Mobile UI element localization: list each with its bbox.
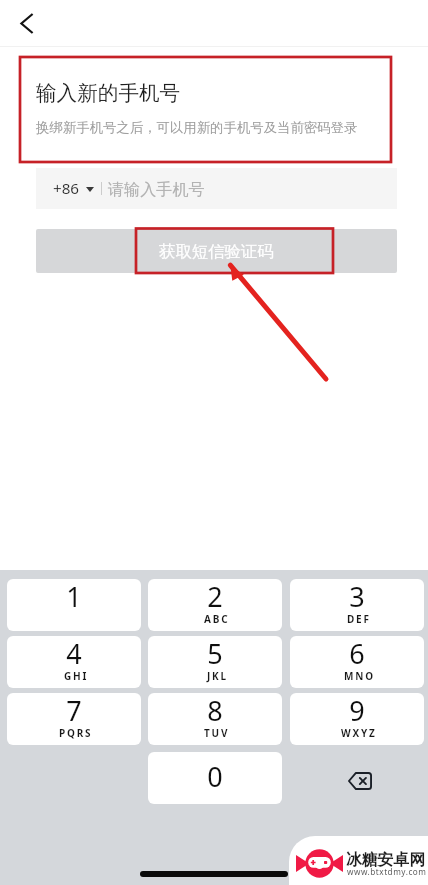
staticText: +86 bbox=[53, 178, 80, 199]
staticText: 输入新的手机号 bbox=[36, 80, 181, 106]
button[interactable]: 8 bbox=[148, 693, 282, 745]
button[interactable]: 0 bbox=[148, 752, 282, 804]
button[interactable]: 7 bbox=[7, 693, 141, 745]
staticText: 1 bbox=[7, 579, 141, 615]
staticText: 0 bbox=[148, 758, 282, 795]
button[interactable]: Backspace bbox=[293, 755, 427, 807]
staticText: 6 bbox=[290, 636, 424, 672]
staticText: MNO bbox=[344, 669, 375, 683]
button[interactable]: 1 bbox=[7, 579, 141, 631]
staticText: www.btxtdmy.com bbox=[347, 866, 427, 877]
button[interactable]: 获取短信验证码 bbox=[36, 229, 397, 273]
staticText: 9 bbox=[290, 693, 424, 729]
staticText: 获取短信验证码 bbox=[159, 241, 274, 262]
staticText: 7 bbox=[7, 693, 141, 729]
staticText: JKL bbox=[207, 669, 228, 683]
button[interactable]: 4 bbox=[7, 636, 141, 688]
staticText: WXYZ bbox=[341, 726, 377, 740]
button[interactable]: 3 bbox=[290, 579, 424, 631]
staticText: 2 bbox=[148, 579, 282, 615]
staticText: 3 bbox=[290, 579, 424, 615]
staticText: GHI bbox=[64, 669, 89, 683]
button[interactable]: +86 bbox=[36, 168, 397, 209]
button[interactable]: Back bbox=[7, 3, 47, 43]
button[interactable]: 2 bbox=[148, 579, 282, 631]
staticText: 换绑新手机号之后，可以用新的手机号及当前密码登录 bbox=[36, 119, 358, 136]
staticText: 冰糖安卓网 bbox=[346, 850, 425, 870]
staticText: TUV bbox=[204, 726, 230, 740]
staticText: 请输入手机号 bbox=[108, 179, 205, 199]
staticText: ABC bbox=[204, 612, 230, 626]
button[interactable]: 5 bbox=[148, 636, 282, 688]
button[interactable]: 6 bbox=[290, 636, 424, 688]
button[interactable]: 9 bbox=[290, 693, 424, 745]
staticText: 4 bbox=[7, 636, 141, 672]
staticText: 8 bbox=[148, 693, 282, 729]
staticText: 5 bbox=[148, 636, 282, 672]
staticText: PQRS bbox=[59, 726, 93, 740]
staticText: DEF bbox=[347, 612, 371, 626]
